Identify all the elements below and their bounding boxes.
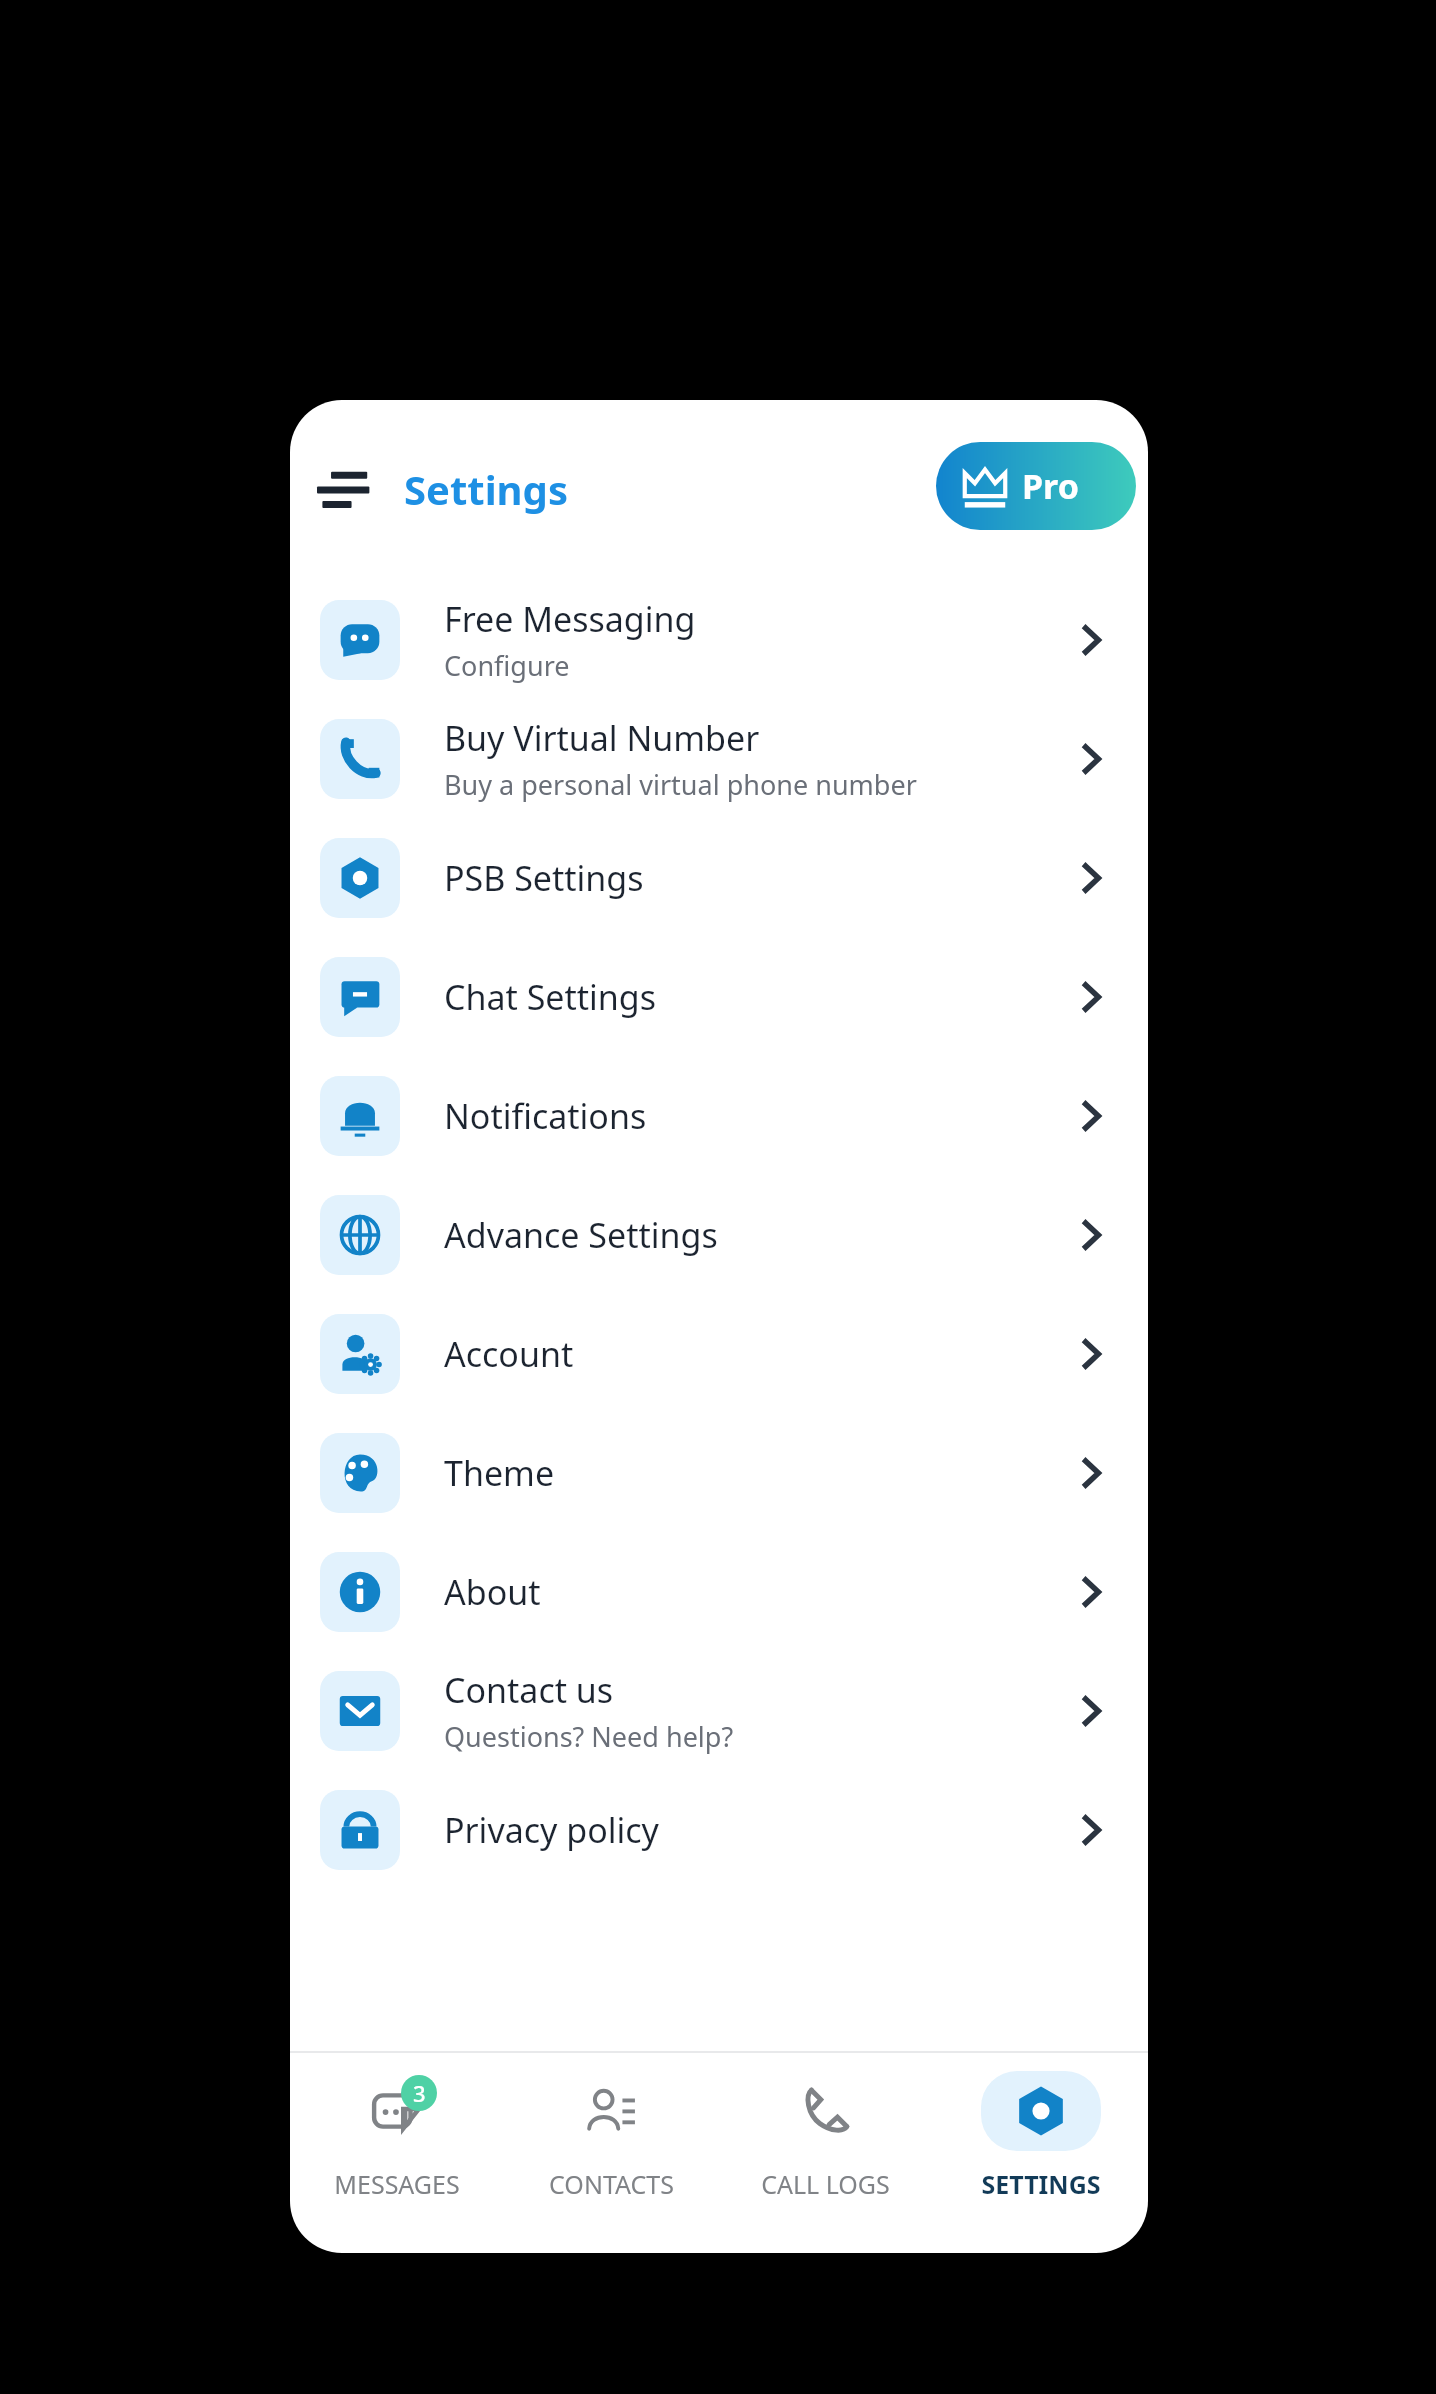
staticText: Settings (404, 462, 568, 516)
button[interactable]: PSB Settings (290, 818, 1148, 937)
button[interactable]: Privacy policy (290, 1770, 1148, 1889)
button[interactable]: Notifications (290, 1056, 1148, 1175)
staticText: Free Messaging (444, 596, 696, 642)
staticText: Buy Virtual Number (444, 715, 760, 761)
button[interactable]: Chat Settings (290, 937, 1148, 1056)
button[interactable]: Advance Settings (290, 1175, 1148, 1294)
staticText: About (444, 1569, 541, 1615)
button[interactable]: SETTINGS (933, 2053, 1148, 2253)
button[interactable]: Buy Virtual Number (290, 699, 1148, 818)
staticText: Account (444, 1331, 574, 1377)
staticText: CALL LOGS (761, 2167, 890, 2201)
staticText: CONTACTS (549, 2167, 674, 2201)
staticText: Buy a personal virtual phone number (444, 766, 917, 803)
button[interactable]: Free Messaging (290, 580, 1148, 699)
button[interactable]: Theme (290, 1413, 1148, 1532)
staticText: 3 (413, 2078, 426, 2108)
button[interactable]: About (290, 1532, 1148, 1651)
button[interactable]: Account (290, 1294, 1148, 1413)
button[interactable]: Menu (296, 440, 392, 536)
staticText: Advance Settings (444, 1212, 718, 1258)
button[interactable]: CONTACTS (504, 2053, 718, 2253)
button[interactable]: Pro (936, 442, 1136, 530)
staticText: Pro (1022, 463, 1079, 509)
button[interactable]: 3 (290, 2053, 504, 2253)
staticText: Notifications (444, 1093, 647, 1139)
staticText: PSB Settings (444, 855, 644, 901)
button[interactable]: CALL LOGS (718, 2053, 933, 2253)
staticText: Privacy policy (444, 1807, 659, 1853)
staticText: Contact us (444, 1667, 614, 1713)
staticText: Configure (444, 647, 570, 684)
staticText: Chat Settings (444, 974, 657, 1020)
staticText: Theme (444, 1450, 555, 1496)
staticText: MESSAGES (334, 2167, 460, 2201)
staticText: SETTINGS (981, 2167, 1101, 2201)
button[interactable]: Contact us (290, 1651, 1148, 1770)
staticText: Questions? Need help? (444, 1718, 734, 1755)
